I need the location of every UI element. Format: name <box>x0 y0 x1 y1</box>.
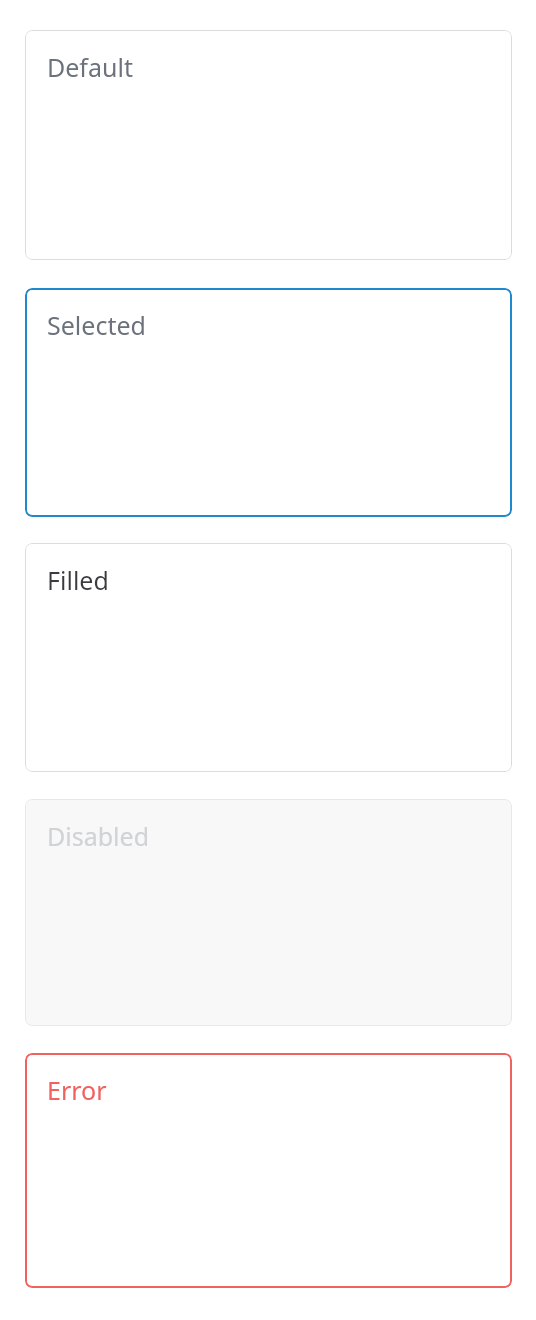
button[interactable]: Selected <box>25 288 512 517</box>
button[interactable]: Filled <box>25 543 512 772</box>
staticText: Error <box>47 1073 107 1107</box>
staticText: Filled <box>47 563 109 597</box>
staticText: Default <box>47 50 133 84</box>
button[interactable]: Default <box>25 30 512 260</box>
staticText: Selected <box>47 308 146 342</box>
staticText: Disabled <box>47 819 150 853</box>
button[interactable]: Disabled <box>25 799 512 1026</box>
button[interactable]: Error <box>25 1053 512 1288</box>
